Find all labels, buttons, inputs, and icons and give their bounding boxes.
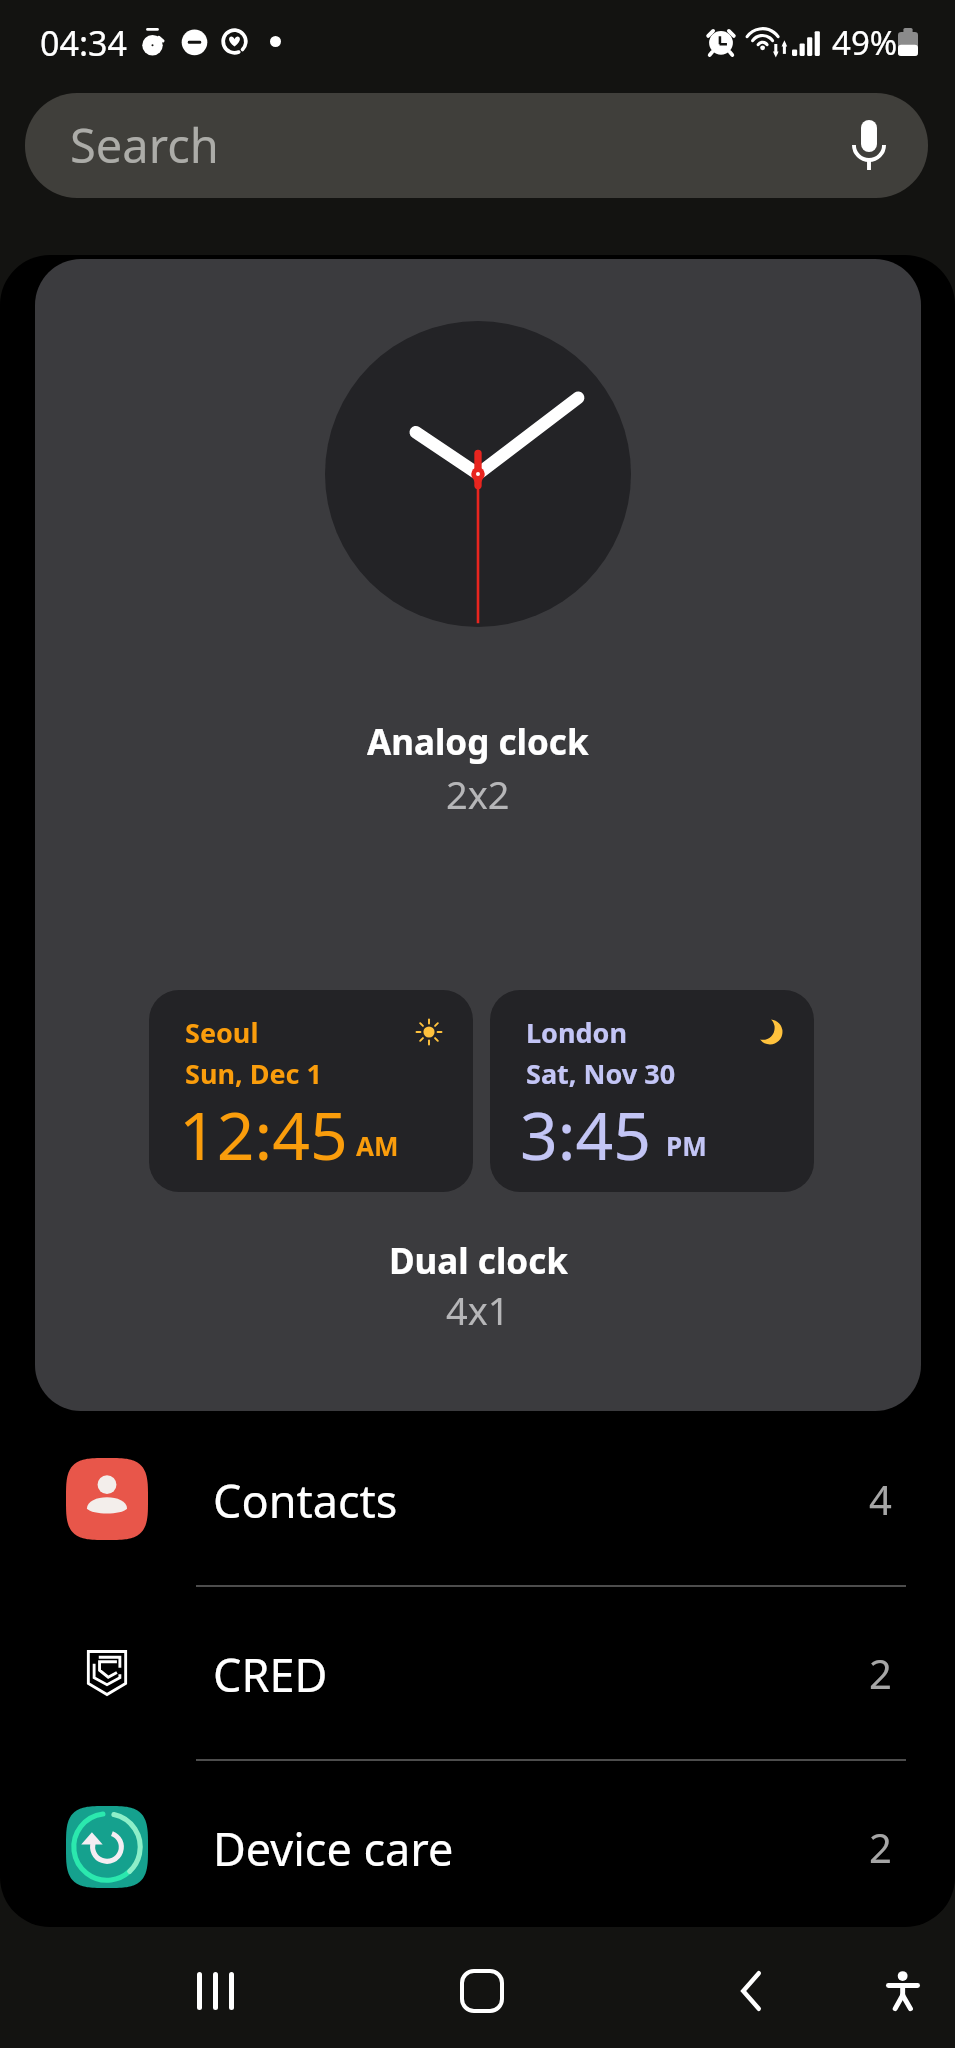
button[interactable]: Voice search [830,105,908,183]
staticText: 3:45 [520,1089,651,1179]
staticText: 2x2 [446,768,510,820]
staticText: PM [666,1128,707,1163]
staticText: AM [356,1128,399,1163]
staticText: 2 [869,1646,892,1700]
staticText: Search [70,113,219,177]
staticText: London [526,1014,628,1051]
button[interactable]: Device care [0,1760,955,1934]
staticText: CRED [213,1644,328,1705]
button[interactable]: Accessibility [868,1956,938,2026]
button[interactable]: Analog clock [35,259,921,1411]
button[interactable]: Back [716,1956,786,2026]
button[interactable]: CRED [0,1586,955,1760]
staticText: 4 [869,1472,892,1526]
staticText: Contacts [213,1470,398,1531]
button[interactable]: Contacts [0,1412,955,1586]
staticText: 12:45 [179,1089,348,1179]
staticText: Device care [213,1818,454,1879]
staticText: Sat, Nov 30 [526,1055,676,1092]
staticText: Dual clock [389,1237,568,1285]
button[interactable]: Seoul [149,990,473,1192]
button[interactable]: London [490,990,814,1192]
button[interactable]: Search [25,93,928,198]
staticText: 04:34 [40,20,127,66]
staticText: Analog clock [367,718,589,766]
staticText: 4x1 [446,1284,510,1336]
staticText: 49% [832,20,898,65]
button[interactable]: Recents [180,1956,250,2026]
staticText: Seoul [185,1014,259,1051]
staticText: Sun, Dec 1 [185,1055,322,1092]
staticText: 2 [869,1820,892,1874]
button[interactable]: Home [447,1956,517,2026]
